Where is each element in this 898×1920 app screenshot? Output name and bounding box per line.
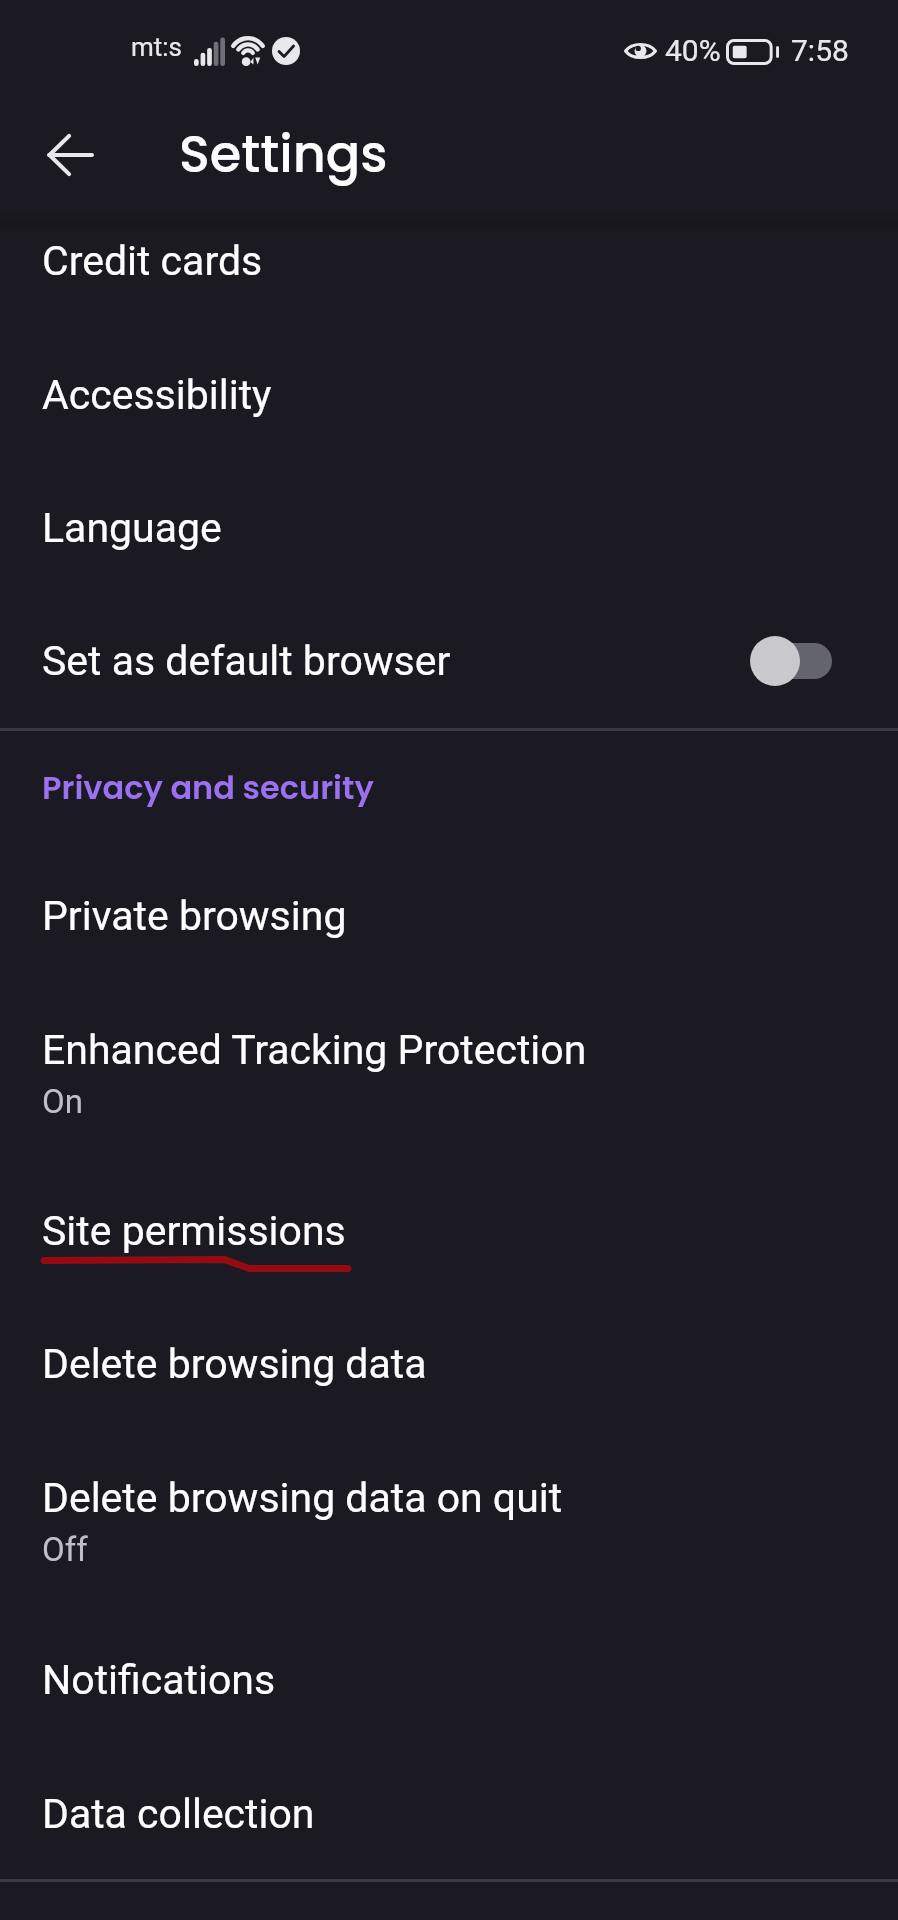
staticText: Accessibility <box>42 371 272 419</box>
button[interactable]: Private browsing <box>0 849 898 983</box>
other: Cellular signal <box>194 37 225 66</box>
button[interactable]: Enhanced Tracking Protection <box>0 983 898 1161</box>
staticText: Language <box>42 504 222 552</box>
staticText: Private browsing <box>42 892 347 940</box>
staticText: Settings <box>179 118 388 189</box>
staticText: Set as default browser <box>42 637 750 685</box>
staticText: Privacy and security <box>42 765 374 810</box>
staticText: On <box>42 1082 83 1121</box>
other: Battery 40 percent <box>726 39 779 65</box>
staticText: Off <box>42 1530 88 1569</box>
button[interactable]: Set as default browser <box>0 595 898 727</box>
button[interactable]: Accessibility <box>0 328 898 462</box>
button[interactable]: Data collection <box>0 1747 898 1881</box>
other: Eye comfort mode <box>624 41 657 61</box>
button[interactable]: Language <box>0 461 898 595</box>
staticText: Data collection <box>42 1790 315 1838</box>
button[interactable]: Delete browsing data on quit <box>0 1431 898 1609</box>
staticText: Site permissions <box>42 1207 346 1255</box>
staticText: Enhanced Tracking Protection <box>42 1026 587 1074</box>
button[interactable]: Delete browsing data <box>0 1297 898 1431</box>
staticText: Notifications <box>42 1656 276 1704</box>
button[interactable]: Notifications <box>0 1613 898 1747</box>
button[interactable]: Site permissions <box>0 1161 898 1301</box>
staticText: Delete browsing data <box>42 1340 427 1388</box>
button[interactable]: Navigate up <box>24 109 116 201</box>
other: Wi-Fi connected <box>231 36 265 66</box>
staticText: mt:s <box>131 32 183 62</box>
staticText: Delete browsing data on quit <box>42 1474 563 1522</box>
other: Secure connection <box>272 37 300 65</box>
button[interactable]: Credit cards <box>0 194 898 328</box>
staticText: Credit cards <box>42 237 263 285</box>
staticText: 7:58 <box>791 33 849 68</box>
staticText: 40% <box>665 33 721 68</box>
